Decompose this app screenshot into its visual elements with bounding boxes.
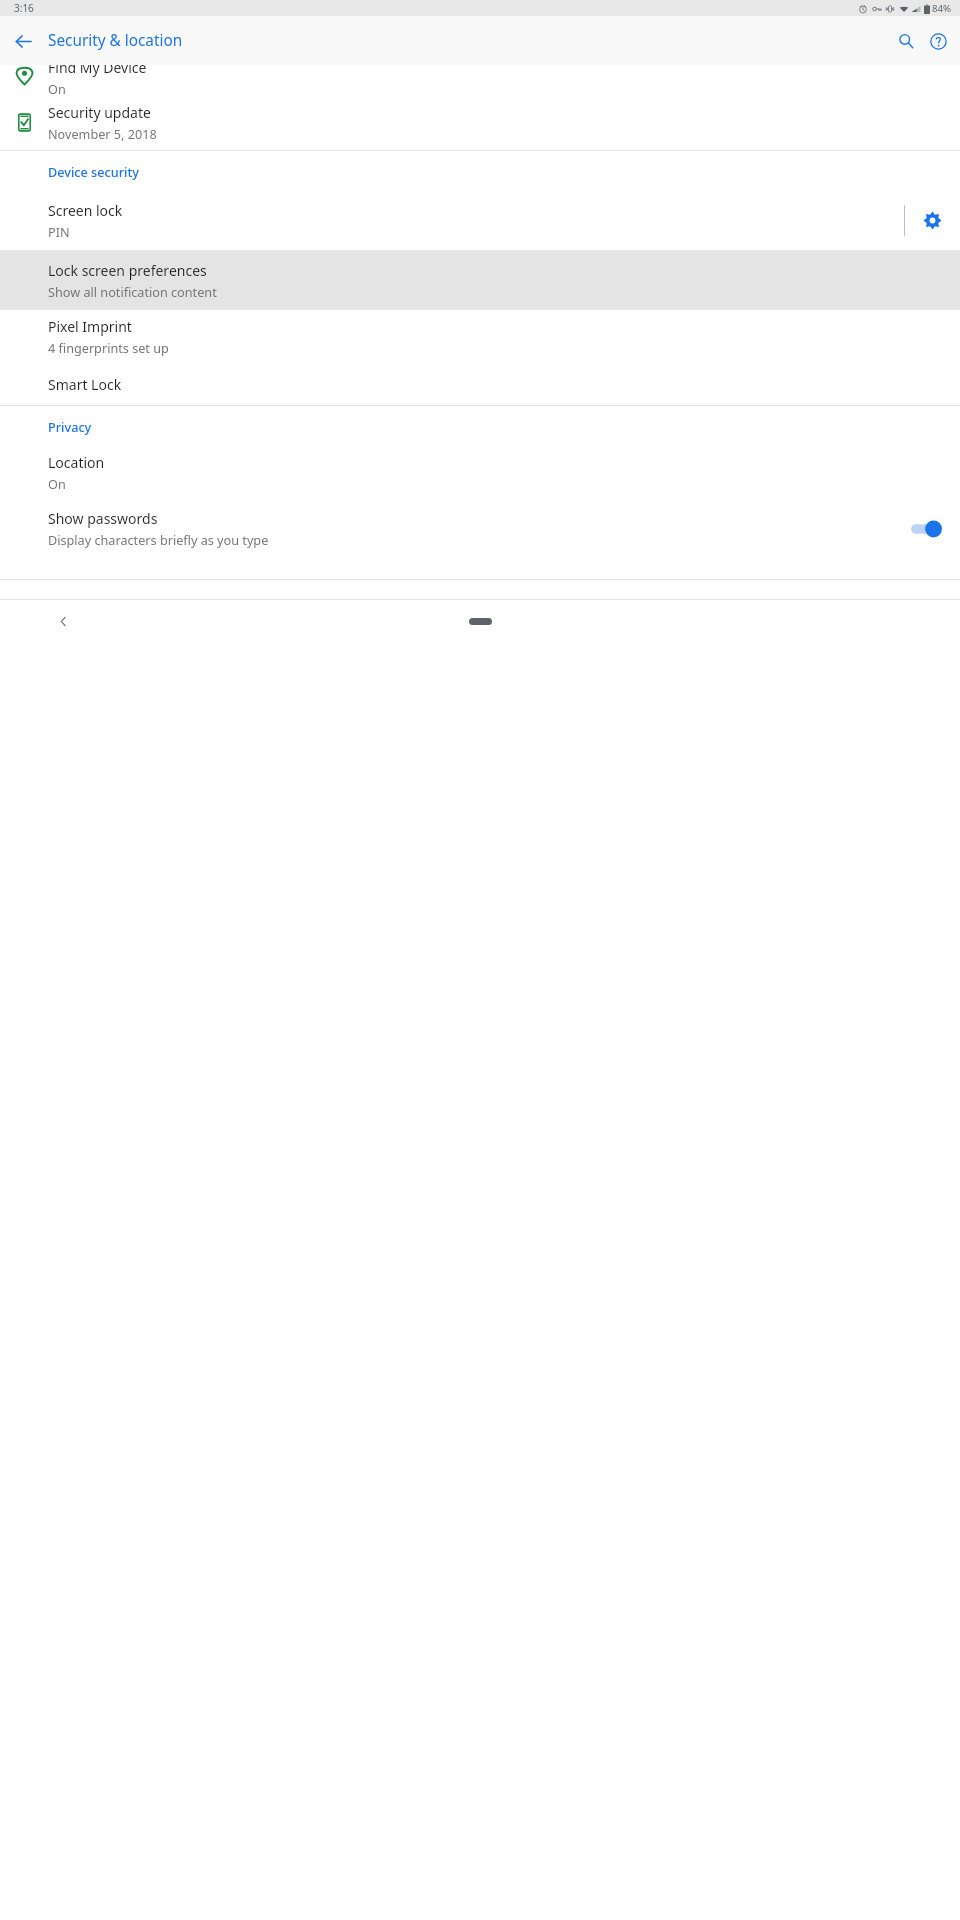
button[interactable]: Back bbox=[50, 608, 77, 635]
staticText: Smart Lock bbox=[48, 375, 122, 394]
staticText: 4 fingerprints set up bbox=[48, 339, 169, 356]
staticText: Show passwords bbox=[48, 509, 158, 528]
staticText: 3:16 bbox=[14, 1, 34, 15]
staticText: Device security bbox=[48, 163, 139, 180]
button[interactable]: Search bbox=[890, 25, 922, 57]
button[interactable]: Show passwords bbox=[0, 499, 960, 558]
button[interactable]: Screen lock bbox=[0, 191, 904, 250]
button[interactable]: Security update bbox=[0, 95, 960, 150]
staticText: Pixel Imprint bbox=[48, 317, 132, 336]
staticText: Find My Device bbox=[48, 65, 147, 77]
staticText: November 5, 2018 bbox=[48, 125, 157, 142]
staticText: Show all notification content bbox=[48, 283, 217, 300]
staticText: On bbox=[48, 80, 66, 95]
staticText: PIN bbox=[48, 223, 70, 240]
staticText: On bbox=[48, 475, 66, 492]
staticText: Display characters briefly as you type bbox=[48, 531, 269, 548]
button[interactable]: Screen lock settings bbox=[905, 191, 960, 250]
button[interactable]: Home bbox=[460, 608, 500, 635]
button[interactable]: Smart Lock bbox=[0, 363, 960, 405]
staticText: Lock screen preferences bbox=[48, 261, 207, 280]
button[interactable]: Find My Device bbox=[0, 65, 960, 95]
staticText: Location bbox=[48, 453, 105, 472]
button[interactable]: Location bbox=[0, 446, 960, 499]
staticText: Security update bbox=[48, 103, 151, 122]
staticText: Screen lock bbox=[48, 201, 123, 220]
button[interactable]: Lock screen preferences bbox=[0, 250, 960, 310]
staticText: 84% bbox=[932, 2, 952, 15]
staticText: Security & location bbox=[48, 30, 183, 51]
staticText: Privacy bbox=[48, 418, 92, 435]
button[interactable]: Help bbox=[922, 25, 954, 57]
button[interactable]: Back bbox=[7, 25, 39, 57]
button[interactable]: Pixel Imprint bbox=[0, 310, 960, 363]
